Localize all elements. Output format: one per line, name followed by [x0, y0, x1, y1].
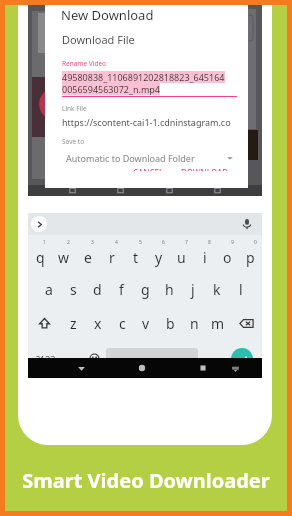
button[interactable]: a — [37, 272, 61, 306]
button[interactable]: x — [86, 306, 110, 341]
button[interactable]: More suggestions — [31, 216, 47, 232]
button[interactable]: m — [206, 306, 230, 341]
button[interactable]: Enter — [231, 348, 253, 370]
button[interactable]: Automatic to Download Folder — [62, 152, 237, 164]
staticText: b — [166, 314, 175, 333]
staticText: , — [72, 351, 75, 366]
staticText: Smart Video Downloader — [5, 467, 287, 494]
button[interactable]: z — [61, 306, 86, 341]
staticText: Download File — [62, 32, 135, 47]
staticText: 9 — [231, 239, 234, 246]
button[interactable]: 49580838_1106891202818823_645164 — [62, 71, 237, 97]
button[interactable]: CANCEL — [128, 164, 169, 174]
staticText: c — [119, 314, 126, 333]
staticText: https://scontent-cai1-1.cdninstagram.co — [62, 116, 231, 128]
staticText: g — [141, 280, 150, 299]
staticText: Rename Video — [62, 59, 106, 68]
other: Expand folder options — [225, 153, 235, 163]
staticText: 0 — [254, 239, 257, 246]
staticText: u — [177, 248, 186, 267]
staticText: DOWNLOAD — [181, 167, 229, 171]
staticText: y — [155, 248, 163, 267]
button[interactable]: Voice input — [240, 217, 254, 231]
button[interactable]: d — [85, 272, 109, 306]
button[interactable]: l — [229, 272, 253, 306]
button[interactable]: j — [181, 272, 205, 306]
staticText: s — [70, 280, 77, 299]
button[interactable]: k — [205, 272, 229, 306]
button[interactable]: . — [198, 341, 221, 376]
button[interactable]: 0 — [239, 238, 262, 272]
staticText: ?123 — [36, 353, 56, 365]
button[interactable]: h — [157, 272, 181, 306]
staticText: m — [211, 314, 225, 333]
staticText: j — [191, 280, 195, 299]
button[interactable]: DOWNLOAD — [176, 164, 234, 174]
button[interactable]: Space — [106, 348, 198, 369]
button[interactable]: s — [61, 272, 85, 306]
staticText: q — [36, 248, 45, 267]
button[interactable]: Emoji — [83, 341, 106, 376]
button[interactable]: c — [110, 306, 134, 341]
staticText: x — [94, 314, 102, 333]
staticText: f — [119, 280, 124, 299]
button[interactable]: n — [182, 306, 206, 341]
button[interactable]: 7 — [170, 238, 193, 272]
button[interactable]: f — [109, 272, 133, 306]
button[interactable]: Recent apps — [187, 358, 219, 378]
button[interactable]: 8 — [193, 238, 216, 272]
staticText: 49580838_1106891202818823_645164 — [62, 71, 225, 83]
staticText: z — [70, 314, 77, 333]
staticText: k — [213, 280, 221, 299]
button[interactable]: b — [158, 306, 182, 341]
staticText: i — [203, 248, 207, 267]
button[interactable]: ?123 — [28, 341, 63, 376]
staticText: 4 — [115, 239, 118, 246]
button[interactable]: 6 — [147, 238, 170, 272]
staticText: 5 — [139, 239, 142, 246]
staticText: 7 — [185, 239, 188, 246]
staticText: CANCEL — [133, 167, 164, 171]
staticText: New Download — [61, 6, 154, 24]
staticText: 3 — [91, 239, 94, 246]
staticText: 6 — [162, 239, 165, 246]
staticText: Link File — [62, 104, 87, 113]
button[interactable]: Back — [65, 358, 97, 378]
button[interactable]: 3 — [76, 238, 100, 272]
button[interactable]: 1 — [28, 238, 52, 272]
button[interactable]: Hide keyboard — [219, 358, 251, 378]
staticText: a — [45, 280, 53, 299]
button[interactable]: Backspace — [230, 306, 262, 341]
button[interactable]: 5 — [124, 238, 147, 272]
button[interactable]: 9 — [216, 238, 239, 272]
staticText: 1 — [43, 239, 46, 246]
staticText: e — [84, 248, 92, 267]
staticText: t — [133, 248, 139, 267]
staticText: 2 — [67, 239, 70, 246]
staticText: r — [109, 248, 115, 267]
staticText: h — [165, 280, 174, 299]
staticText: Save to — [62, 137, 85, 146]
button[interactable]: Shift — [28, 306, 61, 341]
staticText: Automatic to Download Folder — [66, 152, 225, 164]
staticText: n — [190, 314, 199, 333]
button[interactable]: v — [134, 306, 158, 341]
button[interactable]: g — [133, 272, 157, 306]
staticText: o — [223, 248, 232, 267]
staticText: . — [208, 351, 211, 366]
button[interactable]: 4 — [100, 238, 124, 272]
staticText: 8 — [208, 239, 211, 246]
button[interactable]: , — [63, 341, 83, 376]
staticText: l — [239, 280, 243, 299]
staticText: p — [246, 248, 255, 267]
staticText: d — [93, 280, 102, 299]
staticText: 0056594563072_n.mp4 — [62, 83, 160, 95]
button[interactable]: Home — [126, 358, 158, 378]
button[interactable]: https://scontent-cai1-1.cdninstagram.co — [62, 116, 237, 128]
staticText: w — [58, 248, 70, 267]
button[interactable]: 2 — [52, 238, 76, 272]
staticText: v — [142, 314, 150, 333]
